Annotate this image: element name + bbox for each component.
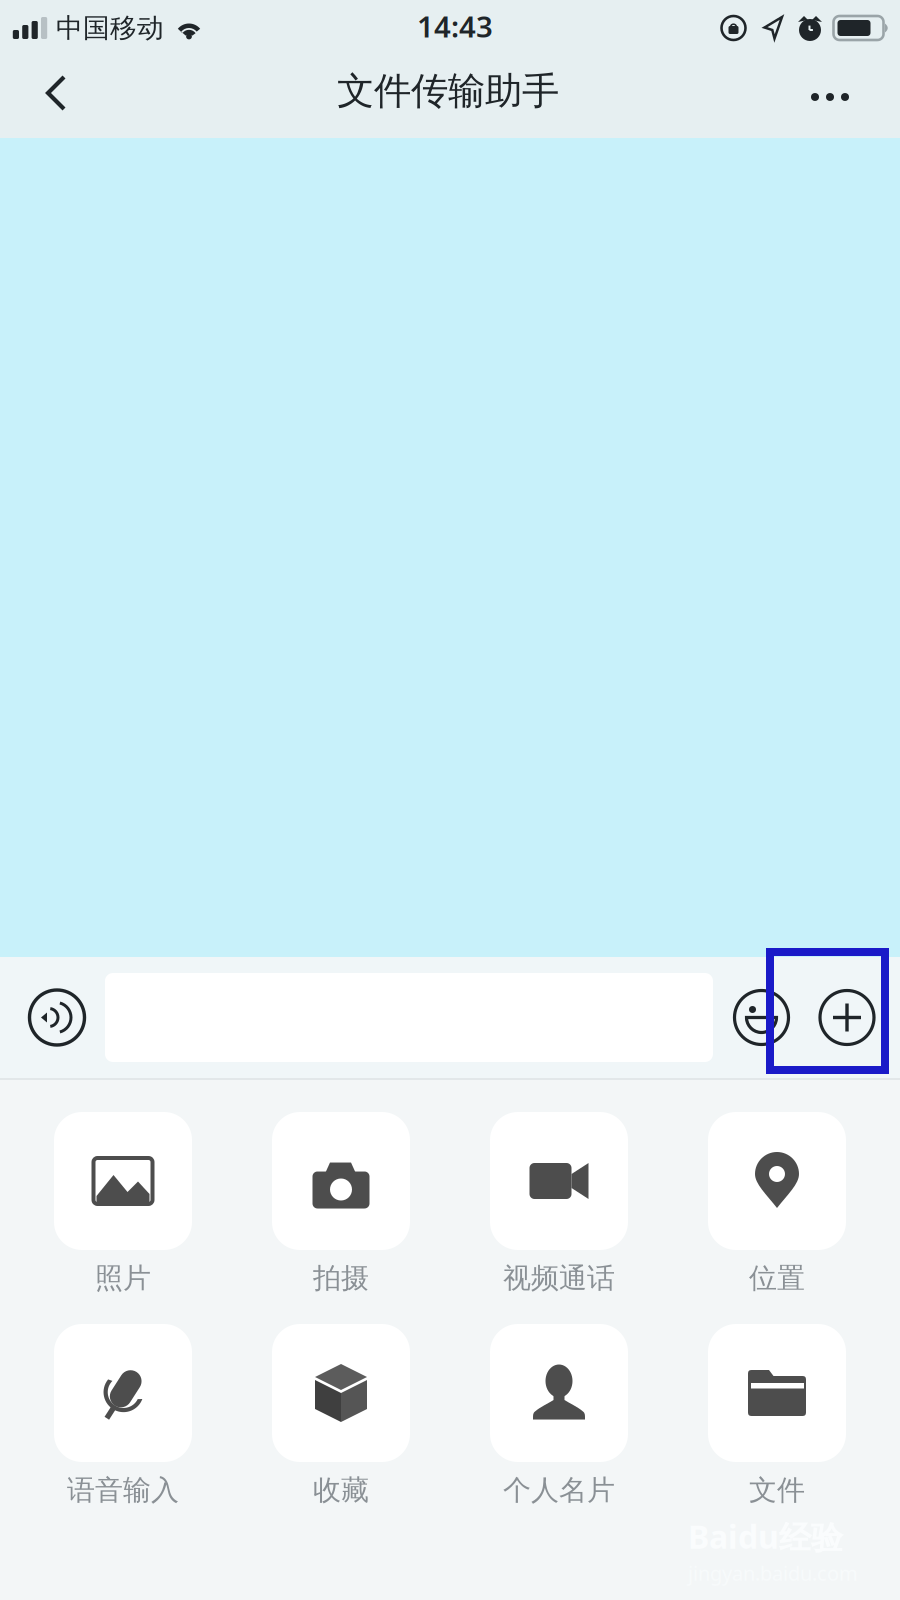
- staticText: 拍摄: [313, 1261, 369, 1295]
- button[interactable]: 收藏: [232, 1324, 450, 1536]
- button[interactable]: 视频通话: [450, 1112, 668, 1324]
- staticText: 视频通话: [503, 1261, 615, 1295]
- button[interactable]: Emoji: [710, 957, 813, 1078]
- staticText: 语音输入: [67, 1473, 179, 1507]
- button[interactable]: More functions: [813, 957, 881, 1078]
- button[interactable]: 语音输入: [14, 1324, 232, 1536]
- button[interactable]: More: [774, 56, 886, 138]
- button[interactable]: 位置: [668, 1112, 886, 1324]
- staticText: 收藏: [313, 1473, 369, 1507]
- button[interactable]: Voice message: [20, 957, 94, 1078]
- staticText: 14:43: [417, 6, 493, 45]
- staticText: 文件传输助手: [337, 68, 559, 114]
- button[interactable]: 个人名片: [450, 1324, 668, 1536]
- staticText: 中国移动: [56, 12, 164, 44]
- staticText: 照片: [95, 1261, 151, 1295]
- button[interactable]: 照片: [14, 1112, 232, 1324]
- staticText: 文件: [749, 1473, 805, 1507]
- staticText: 位置: [749, 1261, 805, 1295]
- button[interactable]: 拍摄: [232, 1112, 450, 1324]
- button[interactable]: 文件: [668, 1324, 886, 1536]
- staticText: 个人名片: [503, 1473, 615, 1507]
- button[interactable]: Back: [16, 56, 96, 138]
